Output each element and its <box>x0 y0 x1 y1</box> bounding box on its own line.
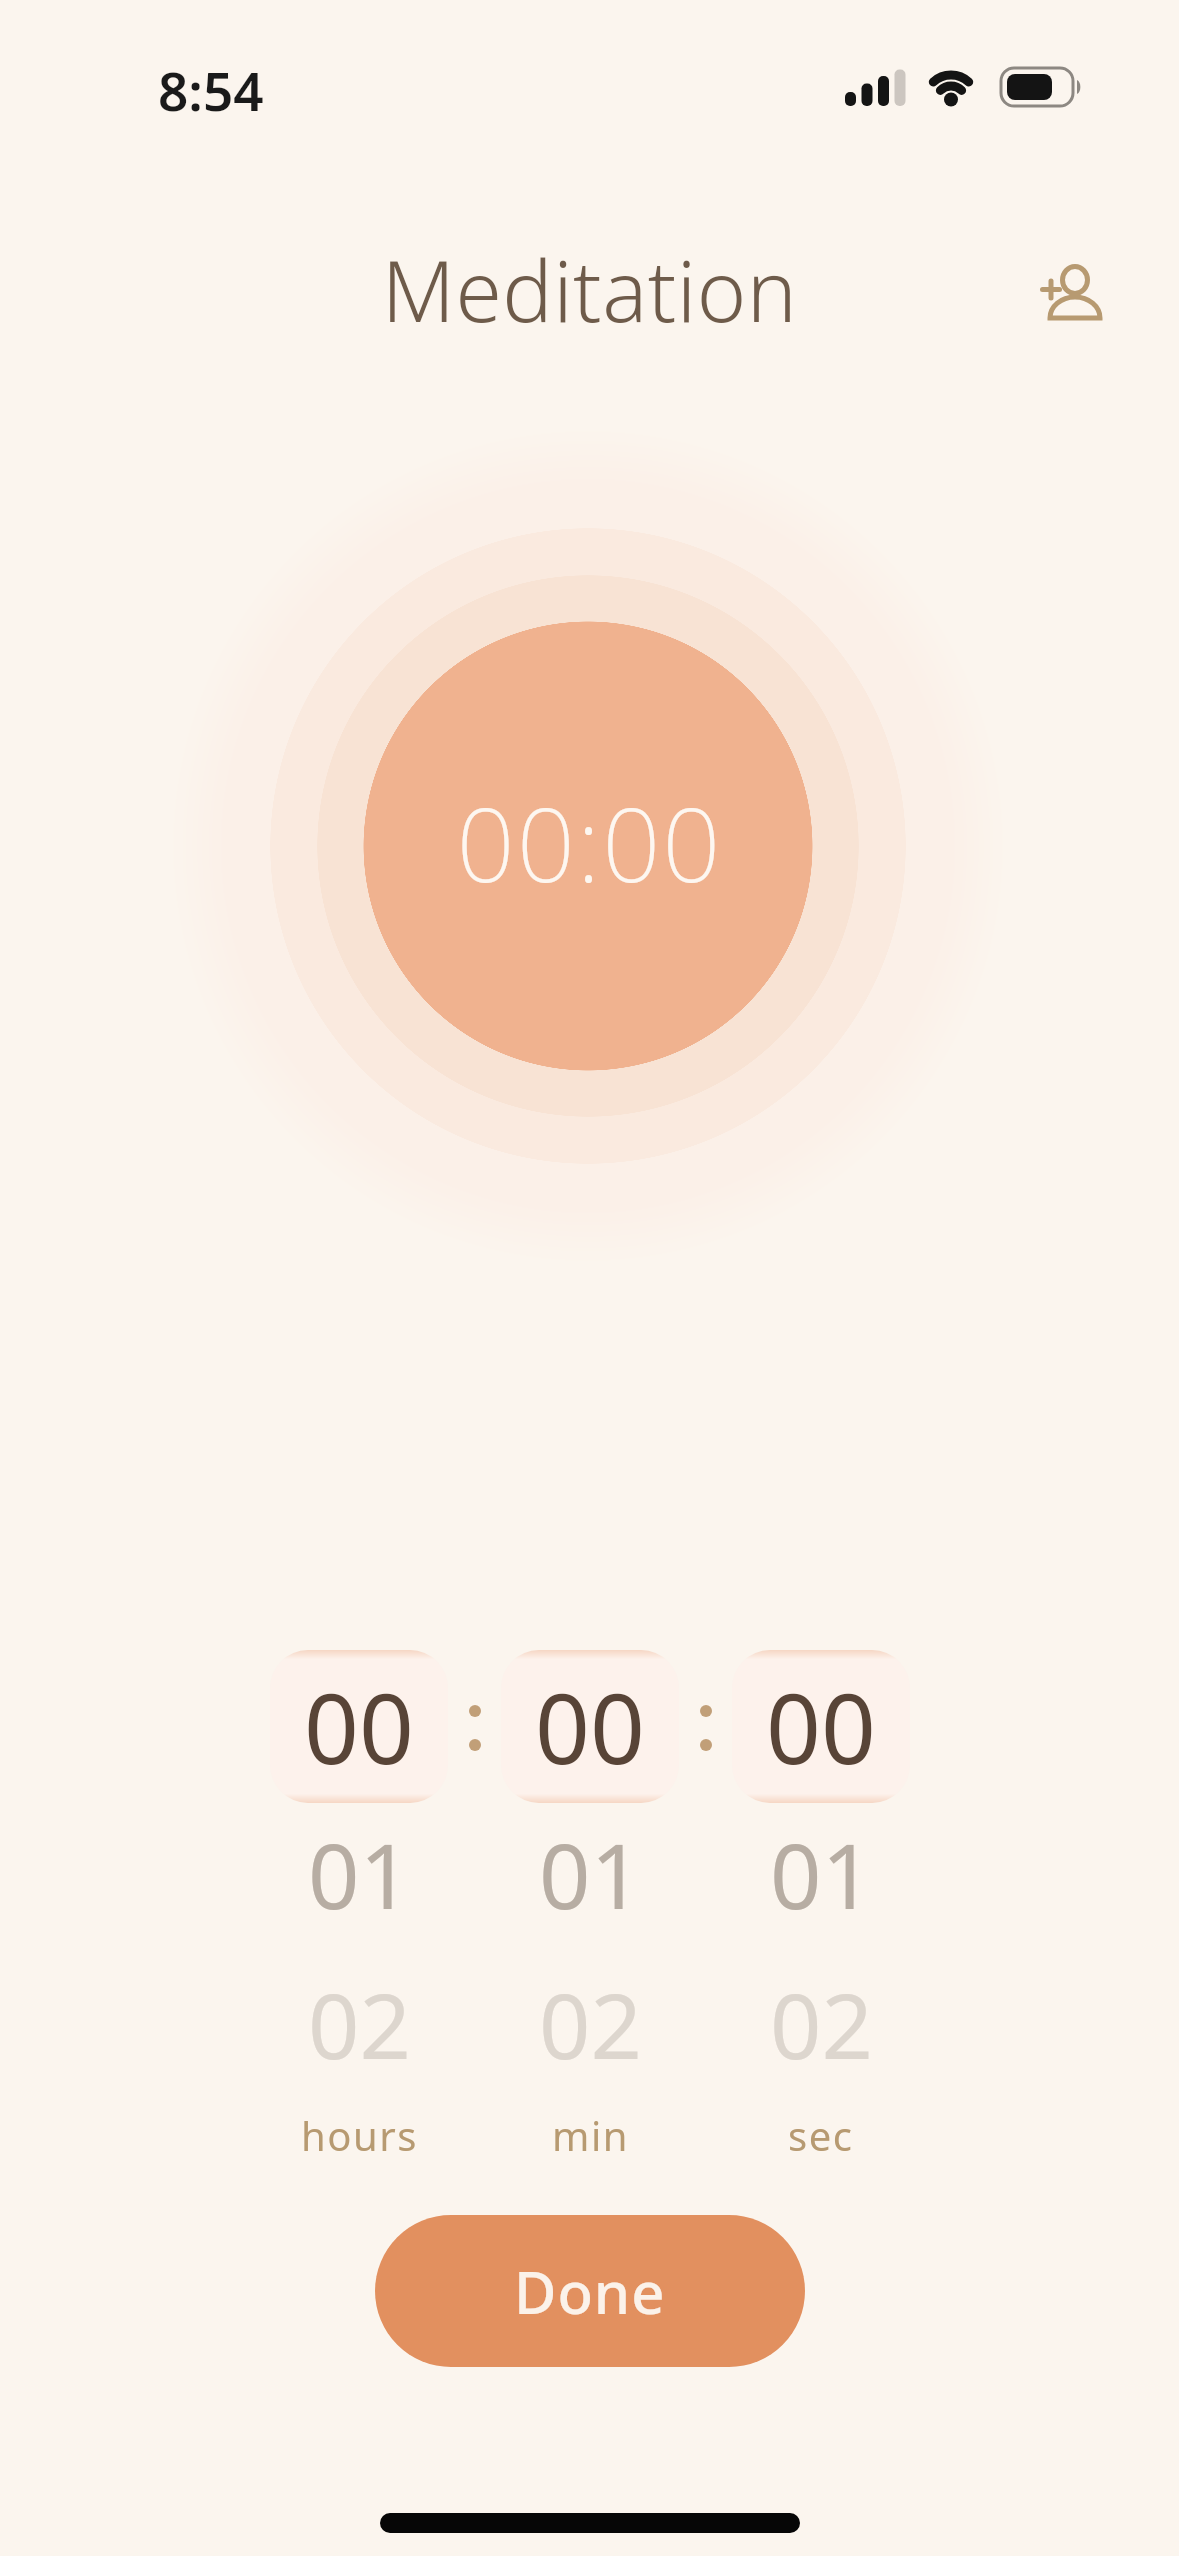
staticText: 8:54 <box>158 54 264 126</box>
staticText: 02 <box>308 1963 411 2086</box>
staticText: 00 <box>535 1661 645 1792</box>
button[interactable]: 00 <box>270 1650 448 1803</box>
staticText: 00:00 <box>0 773 1179 912</box>
staticText: 01 <box>770 1813 873 1936</box>
staticText: 00 <box>304 1661 414 1792</box>
button[interactable]: 00 <box>501 1650 679 1803</box>
staticText: 00 <box>766 1661 876 1792</box>
staticText: min <box>552 2108 629 2162</box>
button[interactable]: 00 <box>732 1650 910 1803</box>
button[interactable] <box>1020 250 1110 340</box>
staticText: Meditation <box>0 232 1179 346</box>
staticText: 02 <box>539 1963 642 2086</box>
staticText: Done <box>514 2252 666 2331</box>
staticText: hours <box>301 2108 418 2162</box>
staticText: 01 <box>539 1813 642 1936</box>
button[interactable]: Done <box>375 2215 805 2367</box>
staticText: 01 <box>308 1813 411 1936</box>
staticText: sec <box>788 2108 854 2162</box>
staticText: 02 <box>770 1963 873 2086</box>
